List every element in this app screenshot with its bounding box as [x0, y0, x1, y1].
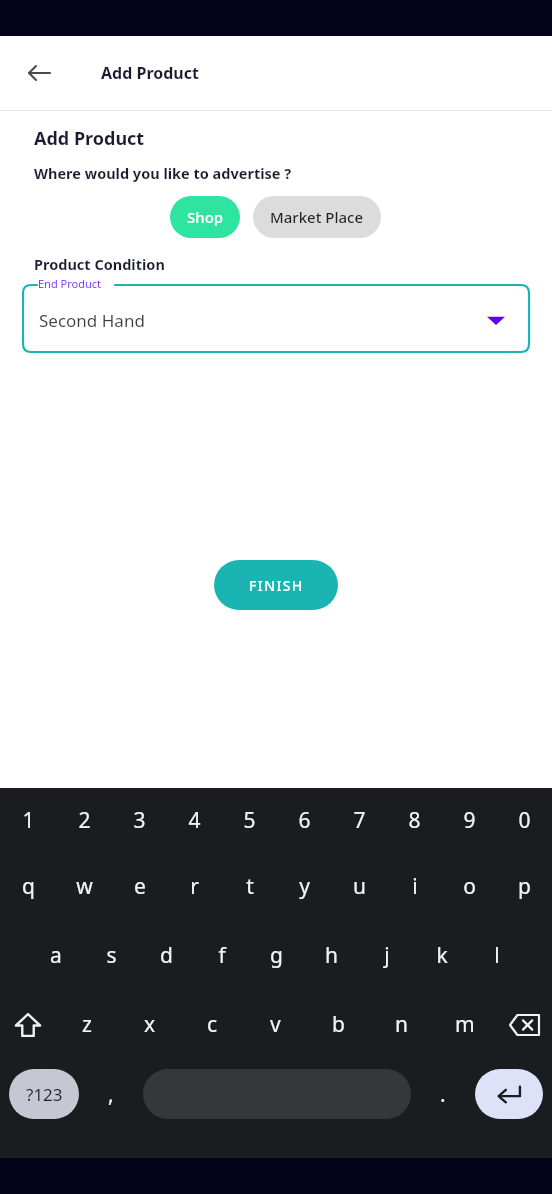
staticText: Second Hand	[39, 309, 145, 332]
staticText: 8	[408, 806, 421, 835]
button[interactable]: Back	[16, 50, 62, 96]
button[interactable]: Shop	[170, 196, 240, 238]
staticText: t	[246, 872, 254, 901]
button[interactable]: n	[370, 990, 433, 1059]
staticText: m	[455, 1010, 475, 1039]
button[interactable]: l	[469, 921, 524, 990]
button[interactable]: y	[277, 852, 332, 921]
staticText: 1	[22, 806, 35, 835]
button[interactable]: 5	[222, 788, 277, 852]
button[interactable]: 7	[332, 788, 387, 852]
button[interactable]: Space	[143, 1069, 411, 1119]
button[interactable]: 8	[387, 788, 442, 852]
staticText: f	[218, 941, 226, 970]
staticText: v	[270, 1010, 281, 1039]
button[interactable]: 3	[112, 788, 167, 852]
staticText: w	[76, 872, 93, 901]
button[interactable]: o	[442, 852, 497, 921]
staticText: u	[353, 872, 366, 901]
button[interactable]: 9	[442, 788, 497, 852]
button[interactable]: w	[56, 852, 112, 921]
button[interactable]: 6	[277, 788, 332, 852]
staticText: k	[436, 941, 448, 970]
button[interactable]: g	[249, 921, 304, 990]
button[interactable]: r	[167, 852, 222, 921]
button[interactable]: v	[244, 990, 307, 1059]
button[interactable]: ?123	[9, 1069, 79, 1119]
button[interactable]: FINISH	[214, 560, 338, 610]
staticText: e	[134, 872, 146, 901]
staticText: 0	[518, 806, 531, 835]
button[interactable]: s	[84, 921, 139, 990]
button[interactable]: ,	[79, 1069, 143, 1119]
button[interactable]: p	[497, 852, 552, 921]
staticText: ,	[108, 1080, 114, 1109]
staticText: ?123	[26, 1083, 63, 1106]
staticText: Product Condition	[34, 254, 165, 274]
button[interactable]: c	[181, 990, 244, 1059]
button[interactable]: 1	[0, 788, 56, 852]
staticText: l	[494, 941, 500, 970]
button[interactable]: t	[222, 852, 277, 921]
staticText: 2	[78, 806, 91, 835]
button[interactable]: b	[307, 990, 370, 1059]
staticText: Where would you like to advertise ?	[34, 163, 292, 183]
button[interactable]: k	[414, 921, 469, 990]
staticText: r	[190, 872, 199, 901]
staticText: d	[160, 941, 173, 970]
button[interactable]: e	[112, 852, 167, 921]
staticText: i	[412, 872, 418, 901]
staticText: c	[207, 1010, 218, 1039]
staticText: Shop	[187, 207, 224, 227]
staticText: 4	[188, 806, 201, 835]
staticText: x	[144, 1010, 156, 1039]
staticText: 3	[133, 806, 146, 835]
button[interactable]: 0	[497, 788, 552, 852]
staticText: 7	[353, 806, 366, 835]
button[interactable]: x	[118, 990, 181, 1059]
button[interactable]: Shift	[0, 990, 55, 1059]
staticText: End Product	[38, 276, 101, 291]
button[interactable]: u	[332, 852, 387, 921]
staticText: s	[106, 941, 117, 970]
button[interactable]: h	[304, 921, 359, 990]
staticText: q	[22, 872, 35, 901]
button[interactable]: i	[387, 852, 442, 921]
button[interactable]: j	[359, 921, 414, 990]
staticText: g	[270, 941, 283, 970]
button[interactable]: a	[28, 921, 84, 990]
staticText: .	[440, 1080, 446, 1109]
staticText: FINISH	[249, 576, 304, 595]
button[interactable]: 4	[167, 788, 222, 852]
button[interactable]: Market Place	[253, 196, 381, 238]
staticText: o	[463, 872, 476, 901]
staticText: j	[384, 941, 390, 970]
button[interactable]: d	[139, 921, 194, 990]
button[interactable]: q	[0, 852, 56, 921]
staticText: a	[50, 941, 62, 970]
staticText: h	[325, 941, 338, 970]
staticText: b	[332, 1010, 345, 1039]
staticText: y	[299, 872, 310, 901]
button[interactable]: f	[194, 921, 249, 990]
button[interactable]: m	[433, 990, 496, 1059]
staticText: n	[395, 1010, 408, 1039]
staticText: z	[82, 1010, 92, 1039]
staticText: 9	[463, 806, 476, 835]
staticText: 6	[298, 806, 311, 835]
button[interactable]: z	[55, 990, 118, 1059]
staticText: Add Product	[34, 126, 145, 151]
button[interactable]: Enter	[475, 1069, 543, 1119]
staticText: Market Place	[270, 207, 364, 227]
button[interactable]: 2	[56, 788, 112, 852]
button[interactable]: .	[411, 1069, 475, 1119]
staticText: Add Product	[101, 62, 199, 84]
staticText: p	[518, 872, 531, 901]
button[interactable]: End Product	[23, 278, 529, 352]
button[interactable]: Backspace	[496, 990, 552, 1059]
staticText: 5	[243, 806, 256, 835]
